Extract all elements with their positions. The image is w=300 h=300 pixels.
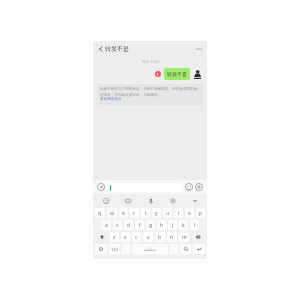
staticText: s: [116, 222, 119, 229]
button[interactable]: Hide keyboard: [190, 196, 199, 205]
staticText: i: [178, 210, 180, 217]
button[interactable]: n: [167, 232, 177, 242]
button[interactable]: More options: [194, 44, 204, 54]
button[interactable]: Settings: [168, 196, 177, 205]
staticText: c: [135, 234, 138, 241]
staticText: 转发不是: [167, 71, 187, 77]
button[interactable]: h: [157, 220, 166, 230]
button[interactable]: z: [110, 232, 119, 242]
staticText: x: [124, 234, 127, 241]
staticText: f: [139, 222, 141, 229]
button[interactable]: f: [135, 220, 144, 230]
staticText: y: [155, 210, 158, 217]
button[interactable]: 转发不是: [164, 68, 190, 80]
button[interactable]: o: [185, 208, 194, 218]
staticText: 转发不是: [105, 45, 129, 53]
button[interactable]: More: [194, 182, 204, 192]
staticText: n: [170, 234, 174, 241]
staticText: r: [133, 210, 136, 217]
staticText: 发送朋友验证: [100, 97, 122, 102]
button[interactable]: c: [132, 232, 141, 242]
button[interactable]: x: [121, 232, 130, 242]
button[interactable]: [108, 183, 182, 192]
button[interactable]: m: [179, 232, 189, 242]
button[interactable]: Enter: [193, 244, 205, 254]
button[interactable]: 123: [109, 244, 120, 254]
button[interactable]: Back: [96, 44, 105, 53]
button[interactable]: Voice input: [96, 182, 106, 192]
button[interactable]: Emoji keyboard: [101, 196, 110, 205]
button[interactable]: i: [174, 208, 183, 218]
staticText: 昨天 21:54: [142, 59, 159, 64]
staticText: !: [157, 72, 159, 77]
button[interactable]: Avatar: [192, 69, 203, 80]
staticText: 转发不是开启了朋友验证，你还不是他朋友。请先发送朋友验证请求，对方验证通过后，才…: [100, 87, 200, 97]
button[interactable]: l: [190, 220, 199, 230]
staticText: d: [127, 222, 131, 229]
button[interactable]: g: [146, 220, 155, 230]
staticText: l: [194, 222, 196, 229]
button[interactable]: d: [124, 220, 133, 230]
button[interactable]: ,: [122, 244, 130, 254]
staticText: o: [188, 210, 192, 217]
staticText: b: [158, 234, 162, 241]
button[interactable]: Shift: [95, 232, 108, 242]
button[interactable]: Send failed: [155, 71, 161, 77]
staticText: t: [145, 210, 147, 217]
staticText: z: [113, 234, 116, 241]
staticText: v: [147, 234, 150, 241]
button[interactable]: t: [141, 208, 150, 218]
button[interactable]: Language: [95, 244, 107, 254]
button[interactable]: s: [113, 220, 122, 230]
button[interactable]: w: [107, 208, 117, 218]
staticText: e: [122, 210, 125, 217]
staticText: g: [149, 222, 153, 229]
staticText: u: [166, 210, 170, 217]
staticText: h: [160, 222, 164, 229]
button[interactable]: u: [163, 208, 172, 218]
staticText: m: [182, 234, 187, 241]
button[interactable]: Space: [132, 244, 168, 254]
button[interactable]: Emoji: [180, 244, 191, 254]
button[interactable]: j: [168, 220, 177, 230]
button[interactable]: a: [101, 220, 111, 230]
button[interactable]: 转发不是开启了朋友验证，你还不是他朋友。请先发送朋友验证请求，对方验证通过后，才…: [97, 84, 203, 105]
staticText: ,: [125, 247, 127, 252]
button[interactable]: p: [196, 208, 205, 218]
staticText: 123: [111, 247, 118, 252]
button[interactable]: e: [119, 208, 128, 218]
staticText: k: [182, 222, 185, 229]
button[interactable]: Keyboard layout: [123, 196, 132, 205]
button[interactable]: y: [152, 208, 161, 218]
button[interactable]: Microphone: [146, 196, 155, 205]
staticText: q: [98, 210, 102, 217]
staticText: .: [173, 247, 175, 252]
button[interactable]: b: [155, 232, 165, 242]
button[interactable]: Emoji: [184, 182, 194, 192]
button[interactable]: Backspace: [191, 232, 205, 242]
staticText: p: [199, 210, 203, 217]
staticText: w: [110, 210, 114, 217]
button[interactable]: v: [143, 232, 153, 242]
button[interactable]: r: [130, 208, 139, 218]
button[interactable]: q: [95, 208, 105, 218]
staticText: a: [105, 222, 108, 229]
staticText: j: [172, 222, 174, 229]
button[interactable]: k: [179, 220, 188, 230]
